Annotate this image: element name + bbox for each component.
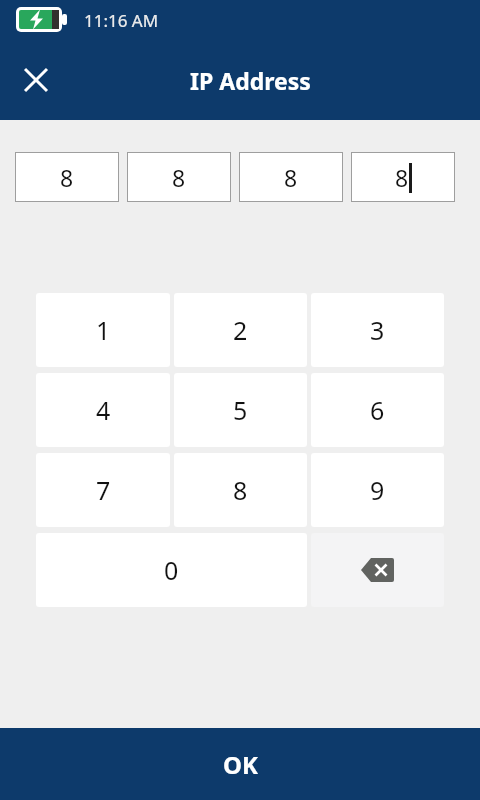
button[interactable]: 8 bbox=[174, 453, 307, 527]
button[interactable]: 5 bbox=[174, 373, 307, 447]
button[interactable]: 8 bbox=[351, 152, 455, 202]
staticText: IP Address bbox=[190, 65, 311, 96]
button[interactable]: 6 bbox=[311, 373, 444, 447]
staticText: 8 bbox=[395, 162, 409, 193]
staticText: 2 bbox=[233, 313, 248, 347]
staticText: 5 bbox=[233, 393, 248, 427]
staticText: 8 bbox=[172, 162, 186, 193]
staticText: 3 bbox=[370, 313, 385, 347]
button[interactable]: 8 bbox=[15, 152, 119, 202]
staticText: 0 bbox=[164, 553, 179, 587]
button[interactable]: 9 bbox=[311, 453, 444, 527]
button[interactable]: 3 bbox=[311, 293, 444, 367]
staticText: 6 bbox=[370, 393, 385, 427]
button[interactable]: 4 bbox=[36, 373, 170, 447]
button[interactable]: OK bbox=[0, 728, 480, 800]
staticText: 7 bbox=[96, 473, 111, 507]
staticText: OK bbox=[223, 748, 258, 781]
staticText: 11:16 AM bbox=[84, 9, 159, 32]
button[interactable]: 0 bbox=[36, 533, 307, 607]
staticText: 8 bbox=[284, 162, 298, 193]
button[interactable]: 1 bbox=[36, 293, 170, 367]
button[interactable] bbox=[311, 533, 444, 607]
button[interactable]: 8 bbox=[127, 152, 231, 202]
button[interactable]: 2 bbox=[174, 293, 307, 367]
button[interactable]: 8 bbox=[239, 152, 343, 202]
staticText: 8 bbox=[60, 162, 74, 193]
button[interactable] bbox=[12, 56, 60, 104]
staticText: 4 bbox=[96, 393, 111, 427]
staticText: 8 bbox=[233, 473, 248, 507]
button[interactable]: 7 bbox=[36, 453, 170, 527]
staticText: 1 bbox=[96, 313, 111, 347]
staticText: 9 bbox=[370, 473, 385, 507]
